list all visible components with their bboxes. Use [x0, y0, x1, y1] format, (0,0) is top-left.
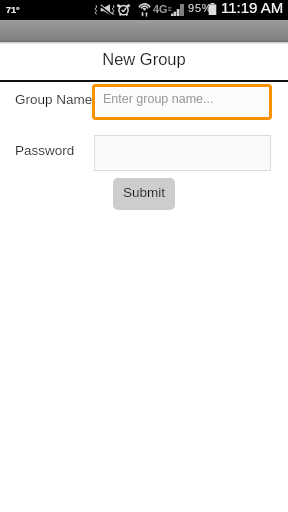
staticText: 71°: [6, 5, 20, 15]
staticText: Submit: [123, 185, 166, 200]
staticText: Enter group name...: [103, 92, 214, 106]
button[interactable]: Submit: [113, 178, 175, 210]
staticText: Group Name: [15, 92, 93, 107]
staticText: New Group: [0, 50, 288, 68]
staticText: 11:19 AM: [221, 0, 284, 16]
button[interactable]: Enter group name...: [92, 84, 272, 120]
staticText: 95%: [188, 2, 213, 14]
button[interactable]: [94, 135, 271, 171]
staticText: 4G: [153, 3, 168, 15]
staticText: Password: [15, 143, 75, 158]
